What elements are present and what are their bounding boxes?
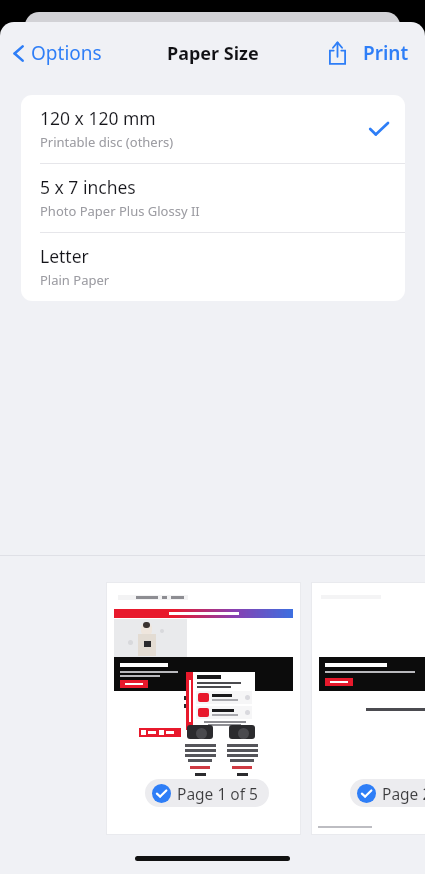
staticText: Page 1 of 5 xyxy=(177,783,258,804)
button[interactable]: Letter xyxy=(21,233,405,301)
button[interactable]: Options xyxy=(6,34,108,72)
staticText: Photo Paper Plus Glossy II xyxy=(40,202,200,220)
staticText: Page 2 xyxy=(382,783,425,804)
staticText: Options xyxy=(31,40,102,66)
button[interactable]: 5 x 7 inches xyxy=(21,164,405,232)
staticText: 120 x 120 mm xyxy=(40,106,156,130)
staticText: Letter xyxy=(40,244,89,268)
button[interactable]: 120 x 120 mm xyxy=(21,95,405,163)
button[interactable]: Print xyxy=(357,32,415,74)
button[interactable]: Page 2 xyxy=(350,779,425,807)
button[interactable]: Share xyxy=(317,33,357,73)
staticText: Print xyxy=(363,40,409,66)
staticText: Printable disc (others) xyxy=(40,133,174,151)
staticText: 5 x 7 inches xyxy=(40,175,136,199)
staticText: Plain Paper xyxy=(40,271,110,289)
staticText: Paper Size xyxy=(167,41,259,66)
button[interactable]: Page 1 of 5 xyxy=(145,779,269,807)
